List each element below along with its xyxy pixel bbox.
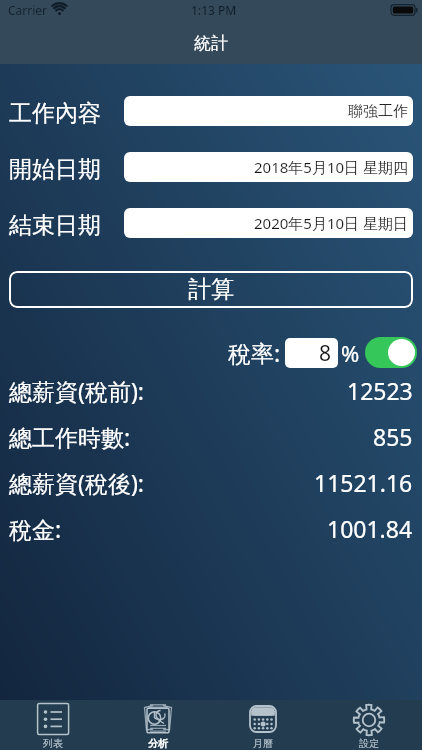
button[interactable]: 聯強工作	[124, 96, 413, 126]
button[interactable]: 2020年5月10日 星期日	[124, 208, 413, 238]
button[interactable]: 2018年5月10日 星期四	[124, 152, 413, 182]
staticText: 2020年5月10日 星期日	[254, 213, 408, 233]
staticText: 列表	[43, 737, 63, 750]
button[interactable]: 設定	[316, 700, 422, 750]
staticText: 總工作時數:	[9, 421, 131, 452]
button[interactable]: 月曆	[210, 700, 316, 750]
staticText: 1:13 PM	[191, 2, 237, 18]
staticText: 聯強工作	[348, 102, 408, 121]
staticText: %	[341, 338, 360, 368]
staticText: 統計	[194, 33, 228, 54]
staticText: Carrier	[8, 2, 48, 18]
button[interactable]: 分析	[105, 700, 210, 750]
staticText: 工作內容	[9, 99, 101, 128]
button[interactable]: 8	[285, 338, 338, 368]
staticText: 開始日期	[9, 155, 101, 184]
staticText: 8	[319, 339, 332, 368]
staticText: 稅金:	[9, 513, 62, 544]
staticText: 稅率:	[228, 337, 281, 368]
staticText: 855	[373, 421, 413, 452]
staticText: 12523	[347, 375, 413, 406]
staticText: 月曆	[253, 737, 273, 750]
staticText: 11521.16	[314, 467, 413, 498]
staticText: 2018年5月10日 星期四	[254, 157, 408, 177]
staticText: 總薪資(稅前):	[9, 375, 144, 406]
button[interactable]: Tax toggle	[365, 337, 417, 368]
staticText: 總薪資(稅後):	[9, 467, 144, 498]
staticText: 設定	[359, 737, 379, 750]
button[interactable]: 列表	[0, 700, 105, 750]
staticText: 計算	[188, 275, 234, 304]
staticText: 1001.84	[327, 513, 413, 544]
button[interactable]: 計算	[9, 271, 413, 308]
staticText: 結束日期	[9, 211, 101, 240]
staticText: 分析	[148, 737, 168, 750]
